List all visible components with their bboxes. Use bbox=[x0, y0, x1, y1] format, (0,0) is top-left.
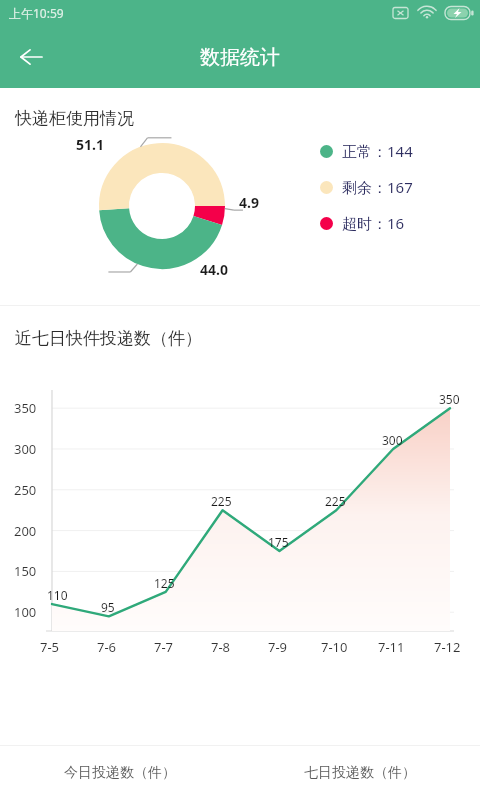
staticText: 250 bbox=[14, 481, 37, 499]
staticText: 125 bbox=[154, 575, 175, 591]
staticText: 近七日快件投递数（件） bbox=[15, 328, 202, 349]
staticText: 350 bbox=[14, 399, 37, 417]
staticText: 剩余：167 bbox=[342, 177, 413, 197]
staticText: 七日投递数（件） bbox=[304, 764, 416, 782]
staticText: 44.0 bbox=[200, 260, 228, 279]
staticText: 300 bbox=[382, 432, 403, 448]
staticText: 95 bbox=[101, 599, 115, 615]
staticText: 51.1 bbox=[76, 135, 104, 154]
staticText: 超时：16 bbox=[342, 213, 405, 233]
staticText: 7-12 bbox=[434, 638, 461, 656]
button[interactable]: Back bbox=[6, 32, 56, 82]
staticText: 7-11 bbox=[378, 638, 405, 656]
staticText: 上午10:59 bbox=[9, 5, 64, 21]
staticText: 4.9 bbox=[239, 193, 259, 212]
staticText: 快递柜使用情况 bbox=[15, 108, 134, 129]
staticText: 100 bbox=[14, 603, 37, 621]
staticText: 200 bbox=[14, 522, 37, 540]
staticText: 数据统计 bbox=[200, 45, 280, 70]
staticText: 7-8 bbox=[211, 638, 231, 656]
staticText: 7-9 bbox=[268, 638, 288, 656]
staticText: 今日投递数（件） bbox=[64, 764, 176, 782]
staticText: 175 bbox=[268, 534, 289, 550]
staticText: 150 bbox=[14, 562, 37, 580]
button[interactable]: 今日投递数（件） bbox=[0, 746, 240, 800]
button[interactable]: 七日投递数（件） bbox=[240, 746, 480, 800]
staticText: 7-6 bbox=[97, 638, 117, 656]
staticText: 7-10 bbox=[321, 638, 348, 656]
staticText: 7-7 bbox=[154, 638, 174, 656]
staticText: 300 bbox=[14, 440, 37, 458]
staticText: 225 bbox=[211, 493, 232, 509]
staticText: 350 bbox=[439, 391, 460, 407]
staticText: 7-5 bbox=[40, 638, 60, 656]
staticText: 110 bbox=[47, 587, 68, 603]
staticText: 正常：144 bbox=[342, 141, 413, 161]
staticText: 225 bbox=[325, 493, 346, 509]
